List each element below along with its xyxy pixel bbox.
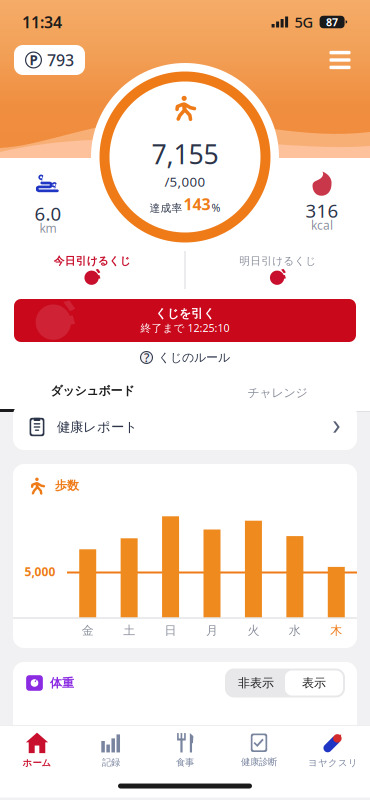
- staticText: P: [29, 51, 37, 69]
- staticText: 非表示: [238, 676, 274, 690]
- staticText: ダッシュボード: [50, 383, 134, 398]
- button[interactable]: ホーム: [0, 725, 74, 773]
- staticText: 143: [183, 193, 210, 215]
- staticText: ?: [144, 349, 149, 365]
- staticText: km: [39, 220, 56, 236]
- staticText: 87: [326, 15, 338, 29]
- staticText: 終了まで 12:25:10: [140, 321, 229, 335]
- button[interactable]: 健康診断: [222, 725, 296, 773]
- button[interactable]: P: [14, 45, 85, 75]
- staticText: 水: [289, 623, 301, 638]
- staticText: 木: [330, 623, 342, 638]
- button[interactable]: 食事: [148, 725, 222, 773]
- staticText: %: [211, 200, 220, 215]
- staticText: 表示: [302, 676, 326, 690]
- staticText: 6.0: [34, 201, 61, 226]
- staticText: くじのルール: [158, 350, 230, 365]
- staticText: 日: [165, 623, 177, 638]
- staticText: 体重: [50, 676, 74, 690]
- staticText: チャレンジ: [247, 385, 307, 400]
- staticText: 記録: [102, 757, 120, 768]
- staticText: 金: [82, 623, 94, 638]
- staticText: 今日引けるくじ: [54, 254, 131, 267]
- button[interactable]: 記録: [74, 725, 148, 773]
- staticText: 316: [305, 198, 338, 223]
- button[interactable]: ?: [140, 348, 230, 367]
- staticText: 7,155: [151, 136, 218, 172]
- staticText: 明日引けるくじ: [239, 254, 316, 267]
- staticText: ヨヤクスリ: [308, 757, 358, 769]
- button[interactable]: ダッシュボード: [0, 370, 185, 412]
- staticText: ホーム: [22, 757, 51, 769]
- staticText: 歩数: [55, 478, 79, 493]
- staticText: 5G: [295, 12, 314, 32]
- staticText: 食事: [176, 757, 194, 768]
- button[interactable]: 非表示: [227, 670, 285, 695]
- button[interactable]: チャレンジ: [185, 370, 370, 412]
- staticText: 11:34: [22, 11, 62, 33]
- staticText: kcal: [311, 217, 333, 233]
- staticText: 健康診断: [241, 756, 277, 768]
- staticText: 5,000: [24, 564, 55, 579]
- staticText: 火: [247, 623, 259, 638]
- staticText: 793: [47, 49, 74, 71]
- button[interactable]: 表示: [285, 670, 343, 695]
- button[interactable]: 健康レポート: [0, 404, 370, 450]
- staticText: /5,000: [164, 173, 205, 190]
- staticText: 月: [206, 623, 218, 638]
- staticText: 土: [123, 623, 135, 638]
- staticText: 健康レポート: [57, 419, 138, 435]
- button[interactable]: メニュー: [324, 44, 356, 76]
- staticText: 達成率: [149, 201, 182, 215]
- button[interactable]: ヨヤクスリ: [296, 725, 370, 773]
- staticText: くじを引く: [155, 306, 215, 321]
- button[interactable]: くじを引く: [0, 299, 370, 342]
